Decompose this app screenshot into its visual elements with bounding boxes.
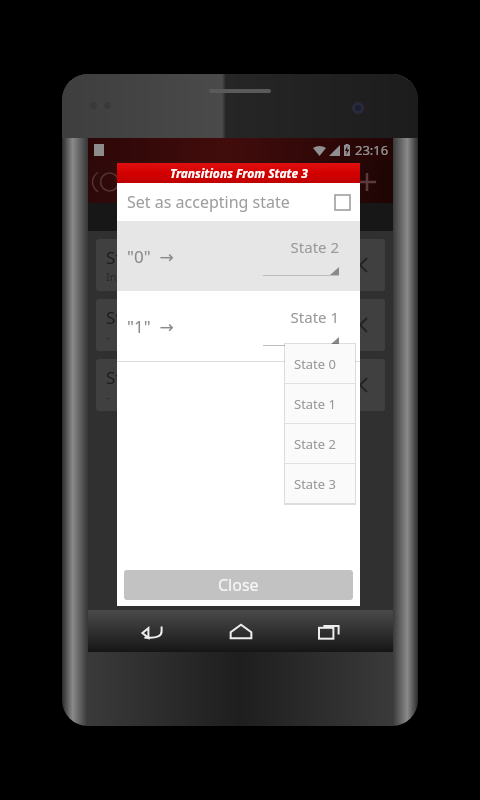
- button[interactable]: State 0: [285, 344, 355, 383]
- button[interactable]: Close: [124, 570, 353, 600]
- staticText: State 0: [294, 355, 336, 373]
- button[interactable]: Home: [216, 610, 266, 652]
- button[interactable]: State 1: [285, 384, 355, 423]
- staticText: 23:16: [355, 141, 389, 159]
- staticText: State 3: [294, 475, 336, 493]
- button[interactable]: State 2: [96, 359, 385, 411]
- button[interactable]: "0" →: [117, 221, 360, 291]
- button[interactable]: State 1: [96, 299, 385, 351]
- staticText: State 2: [106, 366, 161, 389]
- staticText: Initial: [106, 269, 136, 284]
- staticText: State 0: [106, 246, 161, 269]
- staticText: -: [106, 389, 110, 404]
- button[interactable]: Delete: [345, 250, 375, 280]
- button[interactable]: Add: [349, 164, 385, 200]
- staticText: State 2: [263, 237, 339, 257]
- button[interactable]: State 2: [263, 237, 339, 276]
- staticText: Set as accepting state: [127, 191, 290, 213]
- staticText: Transitions From State 3: [170, 165, 308, 181]
- button[interactable]: State 3: [285, 464, 355, 503]
- button[interactable]: "1" →: [117, 291, 360, 361]
- staticText: State 1: [106, 306, 161, 329]
- staticText: Close: [218, 574, 259, 596]
- button[interactable]: Delete: [345, 370, 375, 400]
- staticText: -: [106, 329, 110, 344]
- button[interactable]: Delete: [345, 310, 375, 340]
- staticText: State 1: [294, 395, 336, 413]
- button[interactable]: Back: [127, 610, 177, 652]
- staticText: State 2: [294, 435, 336, 453]
- button[interactable]: Set as accepting state: [117, 183, 360, 221]
- button[interactable]: State 1: [263, 307, 339, 346]
- button[interactable]: State 2: [285, 424, 355, 463]
- staticText: "0" →: [127, 245, 174, 268]
- staticText: "1" →: [127, 315, 174, 338]
- button[interactable]: Recents: [304, 610, 354, 652]
- button[interactable]: State 0: [96, 239, 385, 291]
- staticText: State 1: [263, 307, 339, 327]
